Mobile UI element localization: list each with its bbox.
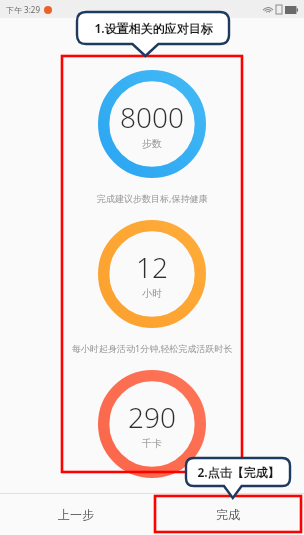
staticText: 小时 [142,287,162,300]
staticText: 290 [128,398,176,436]
staticText: 上一步 [58,507,94,522]
button[interactable]: 12 [98,220,206,328]
staticText: 步数 [142,137,162,150]
staticText: 每小时起身活动1分钟,轻松完成活跃时长 [72,342,233,354]
button[interactable]: 8000 [98,70,206,178]
staticText: 完成建议步数目标,保持健康 [97,192,208,204]
staticText: 12 [136,248,168,286]
staticText: 1.设置相关的应对目标 [94,20,213,36]
staticText: 下午 3:29 [6,4,40,15]
staticText: 完成 [216,507,240,522]
button[interactable]: 290 [98,370,206,478]
button[interactable]: 完成 [152,494,304,535]
staticText: 千卡 [142,437,162,450]
staticText: 8000 [120,98,184,136]
staticText: 根据步数目标,建议每日活动消耗 [88,492,217,504]
button[interactable]: 上一步 [0,494,152,535]
staticText: 2.点击【完成】 [197,464,280,480]
